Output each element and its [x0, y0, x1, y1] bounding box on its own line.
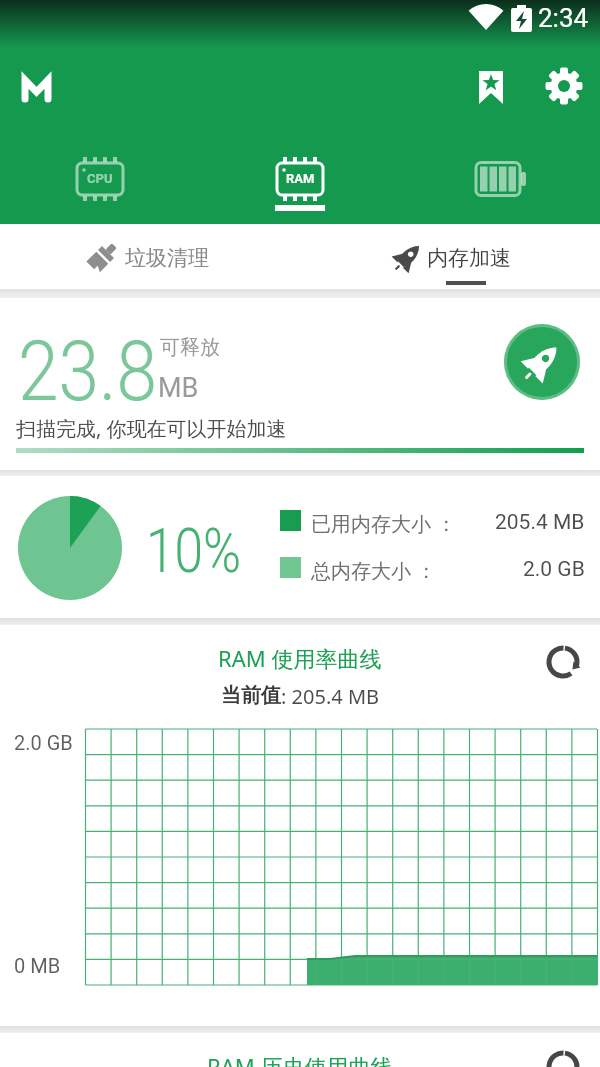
button[interactable]	[455, 150, 545, 210]
button[interactable]: 内存加速	[330, 224, 570, 289]
staticText: 2.0 GB	[523, 557, 585, 581]
staticText: RAM 历史使用曲线	[207, 1051, 393, 1067]
staticText: 内存加速	[427, 245, 511, 271]
staticText: 已用内存大小 ：	[311, 510, 457, 534]
staticText: 205.4 MB	[495, 510, 585, 534]
staticText: RAM	[286, 171, 315, 186]
button[interactable]	[468, 62, 514, 112]
staticText: 0 MB	[14, 954, 61, 977]
button[interactable]	[504, 324, 580, 400]
button[interactable]	[543, 641, 583, 681]
staticText: : 205.4 MB	[281, 683, 380, 709]
button[interactable]: 已用内存大小 ：	[280, 510, 585, 534]
staticText: RAM 使用率曲线	[218, 643, 382, 673]
staticText: 扫描完成, 你现在可以开始加速	[16, 415, 287, 442]
staticText: 垃圾清理	[125, 245, 209, 271]
button[interactable]	[541, 62, 587, 112]
button[interactable]: 总内存大小 ：	[280, 557, 585, 581]
staticText: 23.8	[18, 322, 157, 420]
staticText: 10%	[146, 514, 241, 587]
button[interactable]	[543, 1046, 583, 1067]
staticText: CPU	[87, 171, 113, 186]
staticText: MB	[158, 372, 199, 404]
button[interactable]: 垃圾清理	[30, 224, 270, 289]
staticText: 可释放	[160, 335, 220, 360]
button[interactable]: RAM	[255, 150, 345, 210]
staticText: 2.0 GB	[14, 731, 73, 754]
staticText: 当前值	[221, 683, 281, 708]
staticText: 总内存大小 ：	[311, 557, 437, 581]
staticText: 2:34	[538, 3, 589, 33]
button[interactable]: CPU	[60, 150, 150, 210]
